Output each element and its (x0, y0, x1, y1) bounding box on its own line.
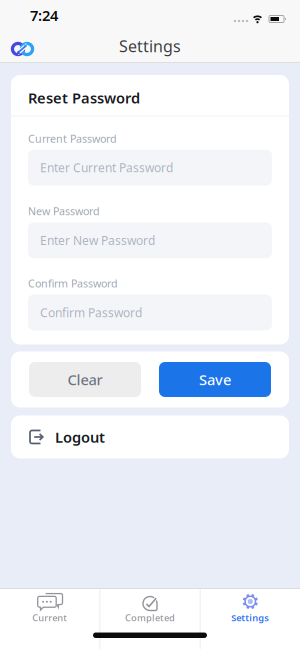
button[interactable]: Clear (29, 362, 141, 397)
button[interactable]: Enter New Password (28, 222, 272, 258)
staticText: Clear (67, 370, 102, 389)
staticText: 7:24 (30, 5, 58, 25)
staticText: Save (199, 370, 231, 389)
staticText: Confirm Password (28, 276, 118, 290)
staticText: Settings (119, 35, 181, 57)
staticText: Settings (231, 611, 269, 624)
staticText: Enter New Password (40, 232, 155, 248)
staticText: Current Password (28, 131, 117, 146)
button[interactable]: Enter Current Password (28, 150, 272, 186)
staticText: Reset Password (28, 88, 140, 107)
staticText: Logout (55, 427, 105, 447)
button[interactable]: Save (159, 362, 271, 397)
button[interactable]: Confirm Password (28, 294, 272, 330)
staticText: Enter Current Password (40, 160, 173, 176)
button[interactable]: Completed (100, 588, 200, 649)
button[interactable]: Current (0, 588, 99, 649)
staticText: Current (32, 611, 67, 624)
staticText: Confirm Password (40, 304, 142, 320)
staticText: New Password (28, 204, 100, 218)
button[interactable]: Logout (11, 415, 289, 458)
staticText: Completed (125, 611, 175, 624)
button[interactable]: Settings (201, 588, 300, 649)
